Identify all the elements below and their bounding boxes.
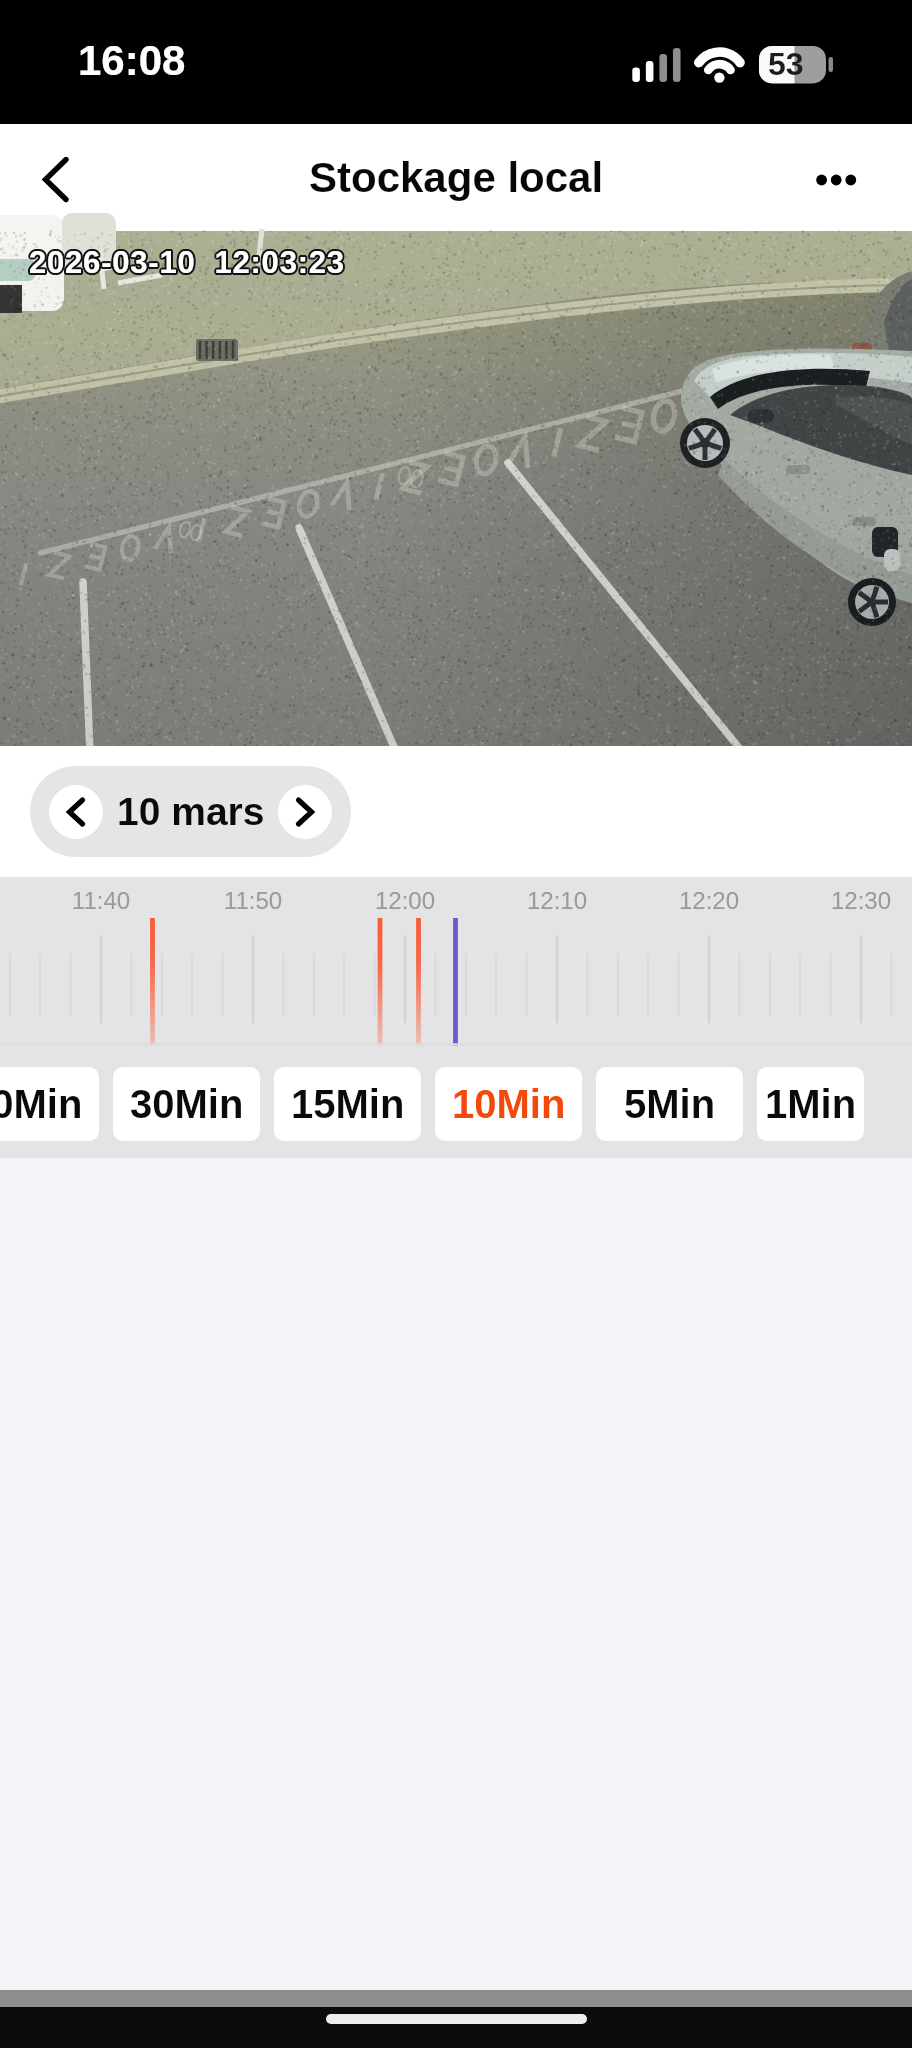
button[interactable]: Next day (278, 785, 332, 839)
staticText: 2026-03-10 12:03:23 (29, 243, 345, 278)
staticText: 2026-03-10 12:03:23 (29, 244, 345, 279)
staticText: 2026-03-10 12:03:23 (27, 245, 343, 280)
button[interactable]: 30Min (113, 1067, 260, 1141)
staticText: 2026-03-10 12:03:23 (28, 246, 344, 281)
staticText: 2026-03-10 12:03:23 (27, 246, 343, 281)
staticText: Stockage local (309, 154, 604, 201)
staticText: 30Min (130, 1082, 244, 1127)
button[interactable]: Back (0, 124, 100, 231)
staticText: 2026-03-10 12:03:23 (29, 247, 345, 282)
staticText: 2026-03-10 12:03:23 (28, 245, 344, 280)
staticText: 12:30 (811, 887, 911, 914)
staticText: 2026-03-10 12:03:23 (28, 244, 344, 279)
staticText: 2026-03-10 12:03:23 (28, 243, 344, 278)
staticText: 2026-03-10 12:03:23 (30, 247, 346, 282)
staticText: 11:40 (51, 887, 151, 914)
staticText: 2026-03-10 12:03:23 (30, 246, 346, 281)
staticText: 5Min (624, 1082, 716, 1127)
button[interactable]: Previous day (30, 766, 351, 857)
staticText: 16:08 (78, 37, 186, 84)
staticText: 1Min (765, 1082, 857, 1127)
staticText: 10 mars (117, 790, 265, 834)
staticText: 2026-03-10 12:03:23 (29, 245, 345, 280)
button[interactable]: Camera playback (0, 231, 912, 746)
staticText: 2026-03-10 12:03:23 (30, 245, 346, 280)
button[interactable]: 11:40 (0, 877, 912, 1046)
button[interactable]: More options (802, 124, 912, 231)
staticText: 12:20 (659, 887, 759, 914)
button[interactable]: 10Min (435, 1067, 582, 1141)
staticText: 2026-03-10 12:03:23 (28, 247, 344, 282)
staticText: 2026-03-10 12:03:23 (31, 246, 347, 281)
staticText: 2026-03-10 12:03:23 (31, 245, 347, 280)
staticText: 15Min (291, 1082, 405, 1127)
staticText: 12:00 (355, 887, 455, 914)
staticText: 2026-03-10 12:03:23 (30, 243, 346, 278)
button[interactable]: 5Min (596, 1067, 743, 1141)
button[interactable]: Previous day (49, 785, 103, 839)
button[interactable]: 60Min (0, 1067, 99, 1141)
button[interactable]: 1Min (757, 1067, 864, 1141)
staticText: 10Min (452, 1082, 566, 1127)
staticText: 2026-03-10 12:03:23 (29, 246, 345, 281)
staticText: 60Min (0, 1082, 83, 1127)
staticText: 11:50 (203, 887, 303, 914)
staticText: 53 (768, 46, 804, 82)
staticText: 2026-03-10 12:03:23 (27, 244, 343, 279)
staticText: 2026-03-10 12:03:23 (31, 244, 347, 279)
button[interactable]: 15Min (274, 1067, 421, 1141)
staticText: 12:10 (507, 887, 607, 914)
staticText: 2026-03-10 12:03:23 (30, 244, 346, 279)
